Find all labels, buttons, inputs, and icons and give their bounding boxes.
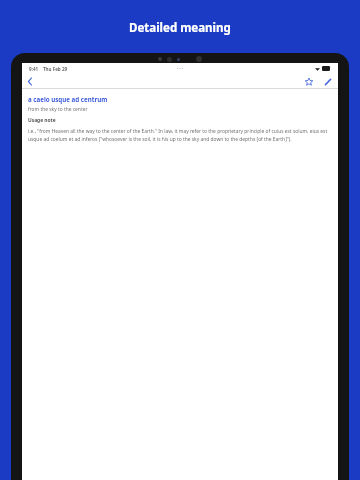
button[interactable]: Copy link [321,75,334,88]
staticText: a caelo usque ad centrum [28,95,108,103]
button[interactable]: Favourite [302,75,315,88]
staticText: Detailed meaning [129,20,231,36]
staticText: from the sky to the center [28,106,88,113]
staticText: Thu Feb 29 [43,66,68,72]
button[interactable]: Back [22,74,38,89]
staticText: i.e., "from Heaven all the way to the ce… [28,128,332,142]
staticText: • • • [177,66,183,71]
staticText: 9:41 [29,66,39,72]
staticText: Usage note [28,117,56,124]
